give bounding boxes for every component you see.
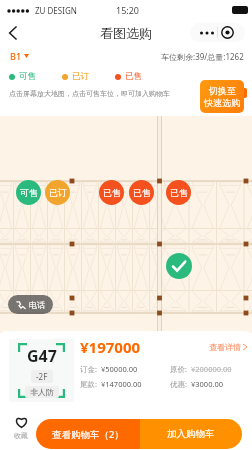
button[interactable]: 已售: [129, 180, 154, 205]
staticText: 看图选购: [100, 25, 152, 41]
button[interactable]: 可售: [16, 180, 41, 205]
button[interactable]: 切换至: [200, 80, 244, 113]
staticText: ¥197000: [80, 337, 141, 357]
button[interactable]: B1: [10, 50, 29, 62]
staticText: 已订: [72, 71, 89, 82]
staticText: ZU DESIGN: [35, 5, 77, 16]
staticText: B1: [10, 50, 22, 62]
staticText: 可售: [19, 71, 36, 82]
staticText: 点击屏幕放大地图，点击可售车位，即可加入购物车: [9, 89, 170, 98]
staticText: 非人防: [30, 387, 54, 397]
staticText: 切换至: [209, 85, 236, 96]
button[interactable]: Back: [4, 25, 20, 41]
staticText: 订金:: [80, 364, 98, 374]
button[interactable]: 电话: [16, 295, 45, 314]
staticText: 15:20: [116, 4, 140, 16]
button[interactable]: 可售: [9, 71, 36, 82]
staticText: 已售: [133, 187, 151, 198]
button[interactable]: 快速选购: [220, 89, 244, 97]
staticText: 已售: [103, 187, 121, 198]
staticText: 收藏: [14, 431, 28, 440]
button[interactable]: 已订: [62, 71, 89, 82]
button[interactable]: 已售: [166, 180, 191, 205]
staticText: 可售: [20, 187, 38, 198]
staticText: -2F: [36, 371, 48, 382]
button[interactable]: More options: [190, 23, 245, 42]
staticText: 优惠:: [170, 379, 188, 389]
staticText: 电话: [29, 300, 45, 310]
staticText: 已订: [49, 187, 67, 198]
button[interactable]: 已售: [115, 71, 142, 82]
staticText: ¥200000.00: [191, 364, 232, 374]
button[interactable]: 加入购物车: [140, 419, 242, 449]
button[interactable]: 收藏: [8, 416, 34, 440]
staticText: 快速选购: [204, 97, 240, 108]
staticText: 车位剩余:39/总量:1262: [161, 51, 244, 62]
staticText: 查看购物车（2）: [52, 428, 124, 441]
staticText: 快速选购: [220, 89, 244, 97]
staticText: 已售: [125, 71, 142, 82]
staticText: ¥147000.00: [101, 379, 142, 389]
staticText: 已售: [170, 187, 188, 198]
staticText: ¥3000.00: [191, 379, 224, 389]
staticText: ¥50000.00: [101, 364, 138, 374]
button[interactable]: Selected parking spot: [166, 253, 192, 279]
button[interactable]: 查看详情: [209, 342, 247, 352]
staticText: 原价:: [170, 364, 188, 374]
button[interactable]: 已订: [45, 180, 70, 205]
staticText: 加入购物车: [167, 428, 215, 440]
staticText: G47: [27, 345, 57, 367]
button[interactable]: 已售: [99, 180, 124, 205]
staticText: 查看详情: [209, 342, 241, 352]
staticText: 尾款:: [80, 379, 98, 389]
button[interactable]: 查看购物车（2）: [36, 419, 140, 449]
